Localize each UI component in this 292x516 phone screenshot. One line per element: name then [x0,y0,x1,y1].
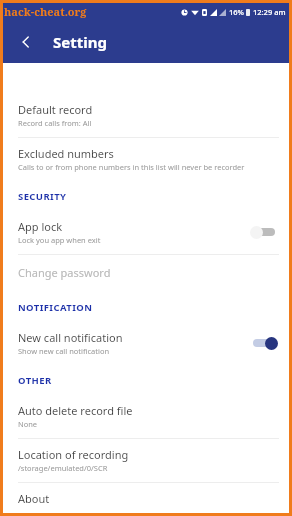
staticText: Lock you app when exit [18,235,101,245]
button[interactable]: Default record [3,94,289,137]
staticText: Calls to or from phone numbers in this l… [18,162,245,172]
button[interactable]: Change password [3,255,289,292]
button[interactable]: Switch on [249,334,279,352]
staticText: Excluded numbers [18,146,114,161]
button[interactable]: Auto delete record file [3,395,289,438]
button[interactable]: Back [12,28,40,56]
button[interactable]: Excluded numbers [3,138,289,181]
staticText: About [18,491,50,504]
staticText: Show new call notification [18,346,110,356]
staticText: Location of recording [18,447,129,462]
staticText: App lock [18,219,63,234]
staticText: hack-cheat.org [4,4,87,19]
staticText: NOTIFICATION [18,301,93,314]
staticText: Record calls from: All [18,118,92,128]
staticText: OTHER [18,374,52,387]
staticText: New call notification [18,330,123,345]
button[interactable]: App lock [3,211,289,254]
button[interactable]: About [3,483,289,513]
button[interactable]: New call notification [3,322,289,365]
button[interactable]: Location of recording [3,439,289,482]
staticText: Default record [18,102,93,117]
staticText: Change password [18,265,111,280]
staticText: 12:29 am [253,7,286,17]
button[interactable]: Switch off [249,223,279,241]
staticText: None [18,419,38,429]
staticText: /storage/emulated/0/SCR [18,463,108,473]
staticText: SECURITY [18,190,67,203]
staticText: Setting [53,32,107,52]
staticText: 16% [229,7,244,17]
staticText: Auto delete record file [18,403,133,418]
